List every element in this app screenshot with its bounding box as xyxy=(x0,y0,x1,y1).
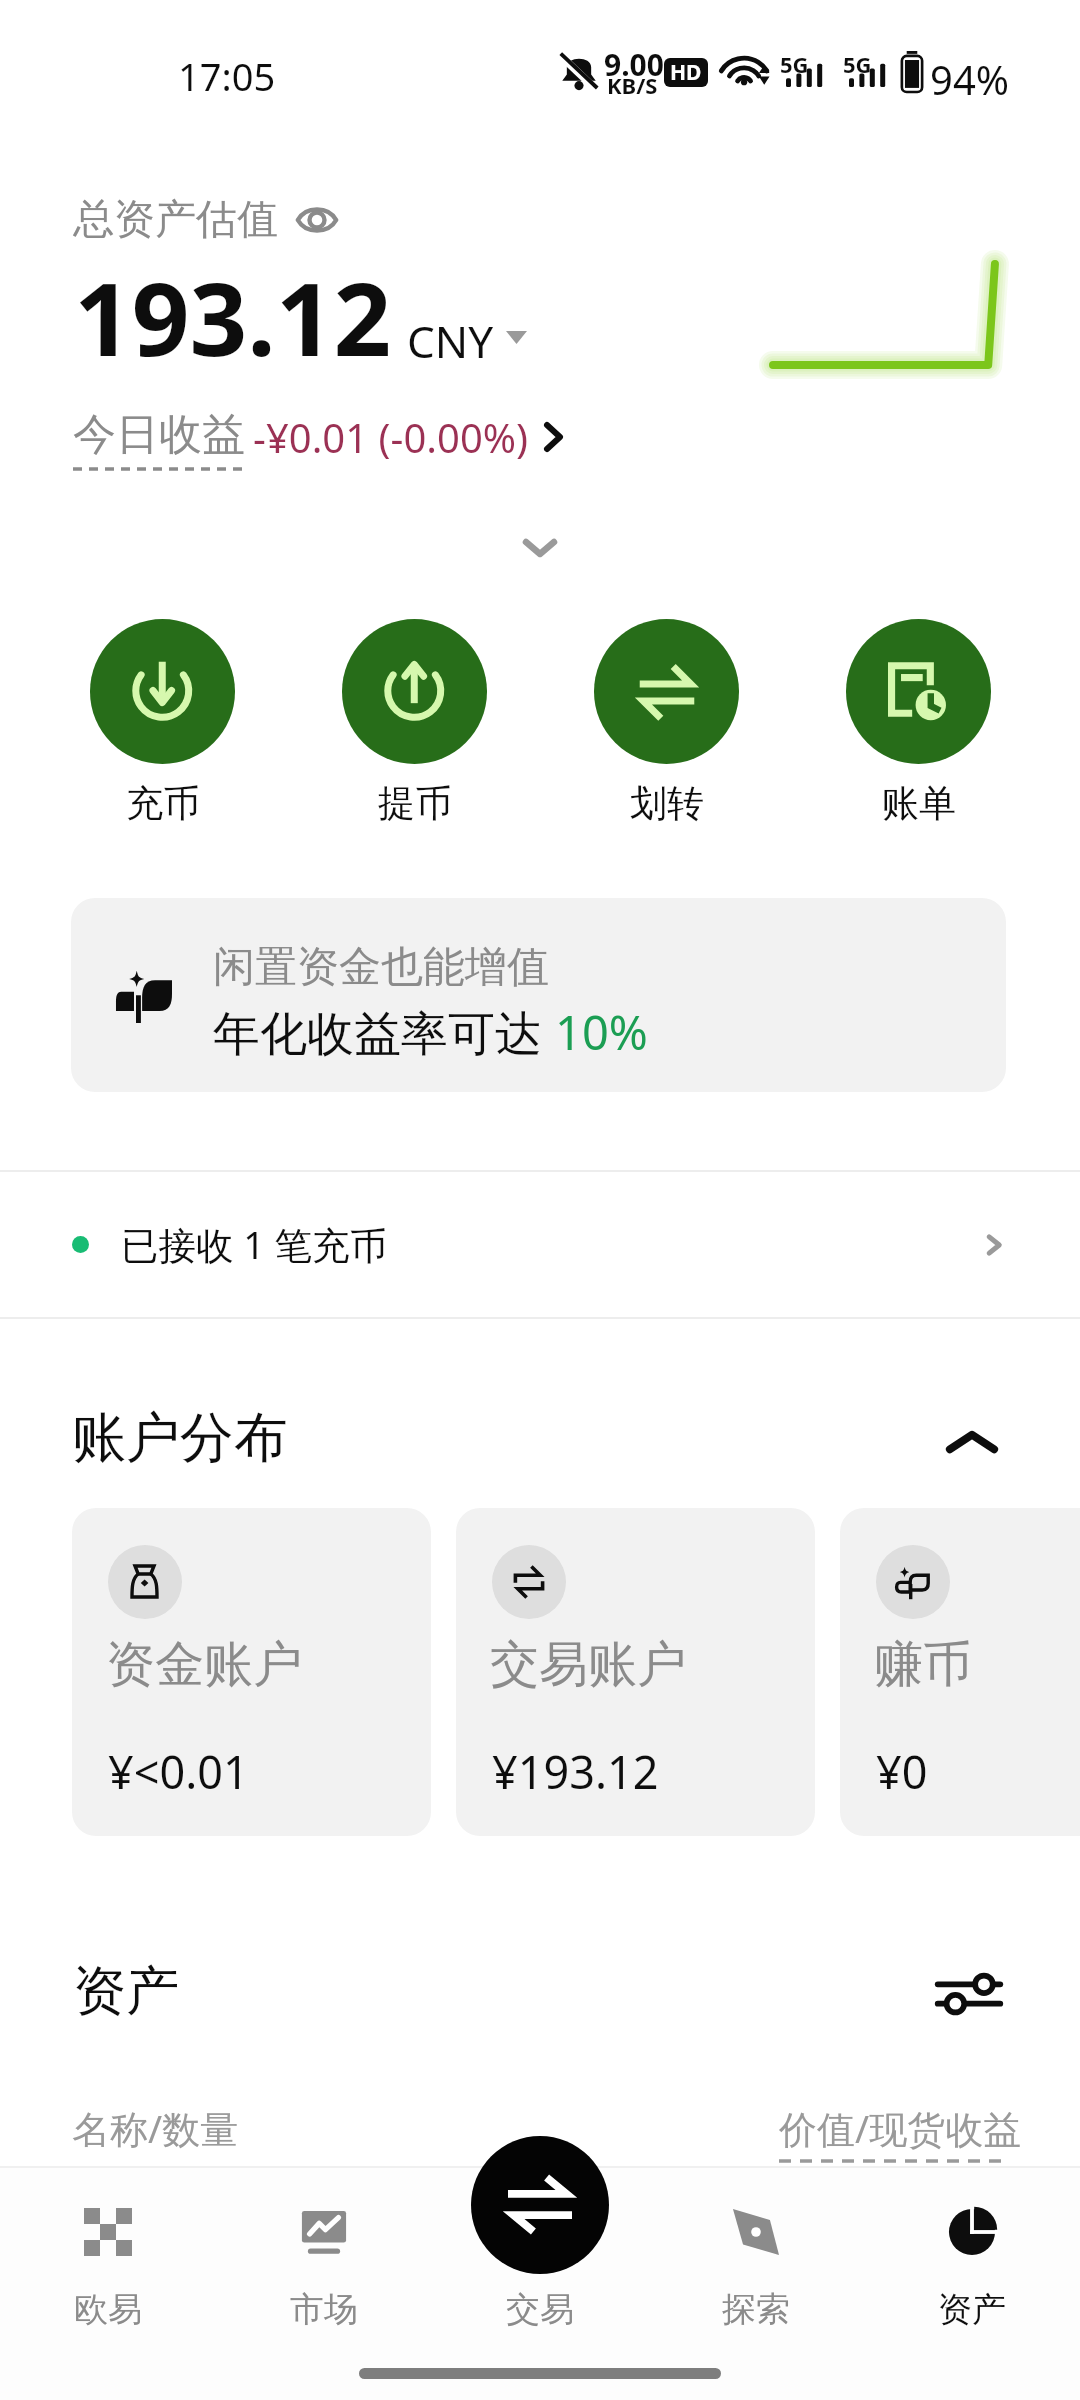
staticText: 价值/现货收益 xyxy=(779,2102,1022,2154)
staticText: 资产 xyxy=(73,1958,179,2025)
button[interactable]: -¥0.01 (-0.00%) xyxy=(253,410,563,464)
button[interactable]: Filter xyxy=(930,1955,1008,2033)
button[interactable]: 交易 xyxy=(432,2166,648,2331)
staticText: 资金账户 xyxy=(106,1634,302,1696)
button[interactable]: 划转 xyxy=(594,619,739,827)
button[interactable]: 提币 xyxy=(342,619,487,827)
staticText: 划转 xyxy=(630,780,704,827)
staticText: KB/S xyxy=(607,70,658,100)
staticText: 已接收 1 笔充币 xyxy=(121,1219,387,1270)
button[interactable]: 赚币 xyxy=(840,1508,1080,1836)
staticText: 总资产估值 xyxy=(73,194,278,246)
staticText: 账户分布 xyxy=(72,1404,288,1472)
staticText: -¥0.01 (-0.00%) xyxy=(253,410,528,464)
staticText: ¥<0.01 xyxy=(108,1741,249,1802)
button[interactable]: Toggle visibility xyxy=(294,197,340,243)
button[interactable]: 闲置资金也能增值 xyxy=(71,898,1006,1092)
staticText: 资产 xyxy=(938,2288,1006,2331)
staticText: 充币 xyxy=(126,780,200,827)
staticText: 年化收益率可达 xyxy=(213,1000,555,1064)
button[interactable]: 已接收 1 笔充币 xyxy=(0,1172,1080,1317)
staticText: HD xyxy=(670,58,702,87)
staticText: ¥193.12 xyxy=(492,1741,659,1802)
staticText: 探索 xyxy=(722,2288,790,2331)
staticText: 交易 xyxy=(506,2288,574,2331)
staticText: 提币 xyxy=(378,780,452,827)
button[interactable]: 交易账户 xyxy=(456,1508,815,1836)
staticText: 9.00 xyxy=(604,44,664,85)
staticText: CNY xyxy=(407,311,494,371)
staticText: 闲置资金也能增值 xyxy=(213,941,549,994)
staticText: 今日收益 xyxy=(73,408,245,462)
button[interactable]: 充币 xyxy=(90,619,235,827)
button[interactable]: 交易 Trade xyxy=(471,2136,609,2274)
staticText: 193.12 xyxy=(74,248,392,386)
staticText: 赚币 xyxy=(874,1634,972,1696)
button[interactable]: 资金账户 xyxy=(72,1508,431,1836)
staticText: 17:05 xyxy=(178,50,276,102)
button[interactable]: 资产 xyxy=(864,2166,1080,2331)
staticText: 94% xyxy=(930,52,1009,106)
button[interactable]: Expand xyxy=(504,524,576,572)
staticText: 交易账户 xyxy=(490,1634,686,1696)
staticText: 10% xyxy=(555,1000,648,1064)
button[interactable]: 市场 xyxy=(216,2166,432,2331)
button[interactable]: 探索 xyxy=(648,2166,864,2331)
button[interactable]: Collapse xyxy=(938,1408,1006,1476)
staticText: ¥0 xyxy=(876,1741,928,1802)
staticText: 5G xyxy=(780,49,809,79)
staticText: 账单 xyxy=(882,780,956,827)
staticText: 欧易 xyxy=(74,2288,142,2331)
button[interactable]: 账单 xyxy=(846,619,991,827)
staticText: 市场 xyxy=(290,2288,358,2331)
staticText: 名称/数量 xyxy=(72,2102,239,2154)
staticText: 5G xyxy=(843,49,872,79)
button[interactable]: 欧易 xyxy=(0,2166,216,2331)
